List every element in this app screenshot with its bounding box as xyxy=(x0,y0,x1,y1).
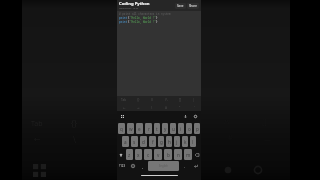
button[interactable]: a xyxy=(122,136,129,147)
staticText: v xyxy=(157,152,160,158)
button[interactable]: Share xyxy=(187,3,199,9)
staticText: s xyxy=(133,139,136,145)
staticText: . xyxy=(184,164,186,169)
button[interactable]: [] xyxy=(173,96,187,104)
button[interactable]: q xyxy=(118,123,125,134)
button[interactable]: c xyxy=(144,149,152,160)
button[interactable]: t xyxy=(154,123,160,134)
button[interactable]: Backspace xyxy=(193,149,201,160)
staticText: | xyxy=(193,98,195,102)
button[interactable]: n xyxy=(174,149,182,160)
staticText: k xyxy=(184,139,187,145)
button[interactable]: y xyxy=(162,123,168,134)
staticText: r xyxy=(148,126,150,132)
button[interactable]: f xyxy=(149,136,156,147)
staticText: Coding Python xyxy=(119,1,150,7)
staticText: ?123 xyxy=(119,164,126,168)
staticText: y xyxy=(164,126,167,132)
staticText: " xyxy=(179,106,181,110)
staticText: mainactivity 18:23 xyxy=(119,7,139,10)
staticText: # xyxy=(165,106,168,110)
staticText: Tab xyxy=(31,119,43,129)
button[interactable]: Voice input xyxy=(183,114,188,119)
button[interactable]: k xyxy=(182,136,188,147)
button[interactable]: Space xyxy=(148,161,179,171)
button[interactable]: Save xyxy=(175,3,186,9)
staticText: t xyxy=(156,126,158,132)
staticText: "Hello, World !" xyxy=(130,20,156,24)
staticText: ← xyxy=(123,106,126,110)
staticText: Tab xyxy=(121,98,127,102)
button[interactable]: b xyxy=(164,149,172,160)
button[interactable]: Shift xyxy=(117,149,125,160)
button[interactable]: Enter xyxy=(190,161,201,171)
staticText: m xyxy=(186,152,191,158)
staticText: "Hello, World !" xyxy=(130,16,156,20)
button[interactable]: g xyxy=(158,136,164,147)
button[interactable]: d xyxy=(140,136,147,147)
button[interactable]: Emoji xyxy=(128,161,138,171)
button[interactable]: i xyxy=(178,123,184,134)
staticText: l xyxy=(192,139,194,145)
button[interactable]: # xyxy=(159,104,173,111)
button[interactable]: h xyxy=(166,136,172,147)
staticText: Share xyxy=(189,4,197,8)
staticText: e xyxy=(138,126,141,132)
button[interactable]: Tab xyxy=(117,96,131,104)
button[interactable]: z xyxy=(126,149,133,160)
button[interactable]: m xyxy=(184,149,192,160)
staticText: j xyxy=(176,139,178,145)
staticText: b xyxy=(167,152,170,158)
button[interactable]: o xyxy=(186,123,192,134)
staticText: ) xyxy=(156,16,158,20)
staticText: ( xyxy=(128,16,130,20)
staticText: z xyxy=(128,152,131,158)
staticText: ) xyxy=(156,20,158,24)
button[interactable]: . xyxy=(180,161,190,171)
staticText: , xyxy=(142,164,144,169)
button[interactable]: w xyxy=(127,123,134,134)
button[interactable]: , xyxy=(138,161,147,171)
button[interactable]: u xyxy=(170,123,176,134)
button[interactable]: r xyxy=(145,123,152,134)
button[interactable]: j xyxy=(174,136,180,147)
staticText: → xyxy=(137,106,140,110)
staticText: a xyxy=(124,139,127,145)
button[interactable]: p xyxy=(194,123,200,134)
staticText: {} xyxy=(71,118,78,129)
staticText: d xyxy=(142,139,145,145)
staticText: p xyxy=(196,126,199,132)
staticText: f xyxy=(152,139,154,145)
button[interactable]: Keyboard switcher xyxy=(120,114,125,119)
button[interactable]: Settings xyxy=(193,114,198,119)
button[interactable]: e xyxy=(136,123,143,134)
staticText: {} xyxy=(137,98,140,102)
staticText: # print all characters in system xyxy=(119,12,171,16)
button[interactable]: ?123 xyxy=(117,161,128,171)
staticText: ' xyxy=(194,106,195,110)
staticText: ( xyxy=(128,20,130,24)
staticText: n xyxy=(177,152,180,158)
button[interactable]: x xyxy=(135,149,142,160)
staticText: g xyxy=(160,139,163,145)
staticText: print xyxy=(119,16,128,20)
staticText: w xyxy=(129,126,133,132)
button[interactable]: l xyxy=(190,136,196,147)
staticText: q xyxy=(120,126,123,132)
button[interactable]: s xyxy=(131,136,138,147)
button[interactable]: v xyxy=(154,149,162,160)
